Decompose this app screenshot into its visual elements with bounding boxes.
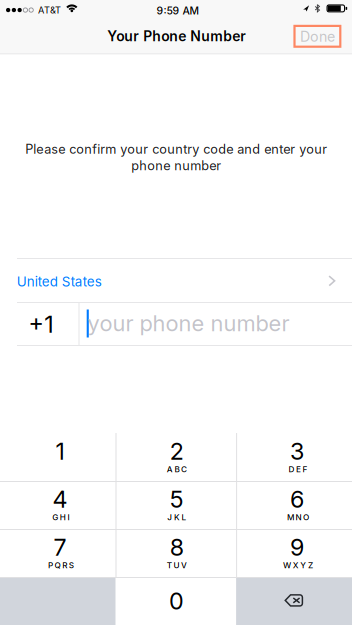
staticText: 9:59 AM (156, 4, 199, 17)
button[interactable]: +1 (0, 303, 78, 345)
staticText: 6 (290, 485, 304, 513)
button[interactable]: 2 (116, 433, 236, 481)
staticText: PQRS (48, 560, 74, 570)
button[interactable]: your phone number (79, 303, 352, 345)
staticText: United States (17, 273, 102, 290)
button[interactable]: 8 (116, 529, 236, 577)
staticText: ABC (167, 464, 187, 474)
staticText: 7 (53, 533, 66, 561)
staticText: JKL (167, 512, 187, 522)
staticText: Please confirm your country code and ent… (25, 141, 327, 173)
staticText: TUV (167, 560, 187, 570)
staticText: +1 (28, 310, 53, 338)
staticText: 4 (52, 485, 67, 513)
button[interactable]: Done (293, 25, 341, 48)
staticText: GHI (52, 512, 69, 522)
staticText: 8 (170, 533, 184, 561)
button[interactable]: Delete (236, 577, 352, 625)
button[interactable]: United States (0, 259, 352, 302)
button[interactable]: 3 (237, 433, 352, 481)
button[interactable]: 7 (0, 529, 115, 577)
staticText: 1 (55, 437, 64, 465)
button[interactable]: 1 (0, 433, 115, 481)
button[interactable]: 4 (0, 481, 115, 529)
staticText: Done (300, 28, 335, 45)
staticText: AT&T (38, 4, 61, 16)
button[interactable]: 0 (116, 577, 236, 625)
button[interactable]: 6 (237, 481, 352, 529)
staticText: your phone number (87, 310, 289, 337)
staticText: WXYZ (283, 560, 313, 570)
button[interactable]: 5 (116, 481, 236, 529)
staticText: MNO (287, 512, 309, 522)
staticText: 3 (290, 437, 304, 465)
staticText: Your Phone Number (107, 28, 246, 44)
staticText: 2 (170, 437, 184, 465)
staticText: 5 (170, 485, 184, 513)
staticText: 0 (169, 587, 184, 615)
staticText: DEF (288, 464, 308, 474)
button[interactable]: 9 (237, 529, 352, 577)
staticText: 9 (290, 533, 304, 561)
